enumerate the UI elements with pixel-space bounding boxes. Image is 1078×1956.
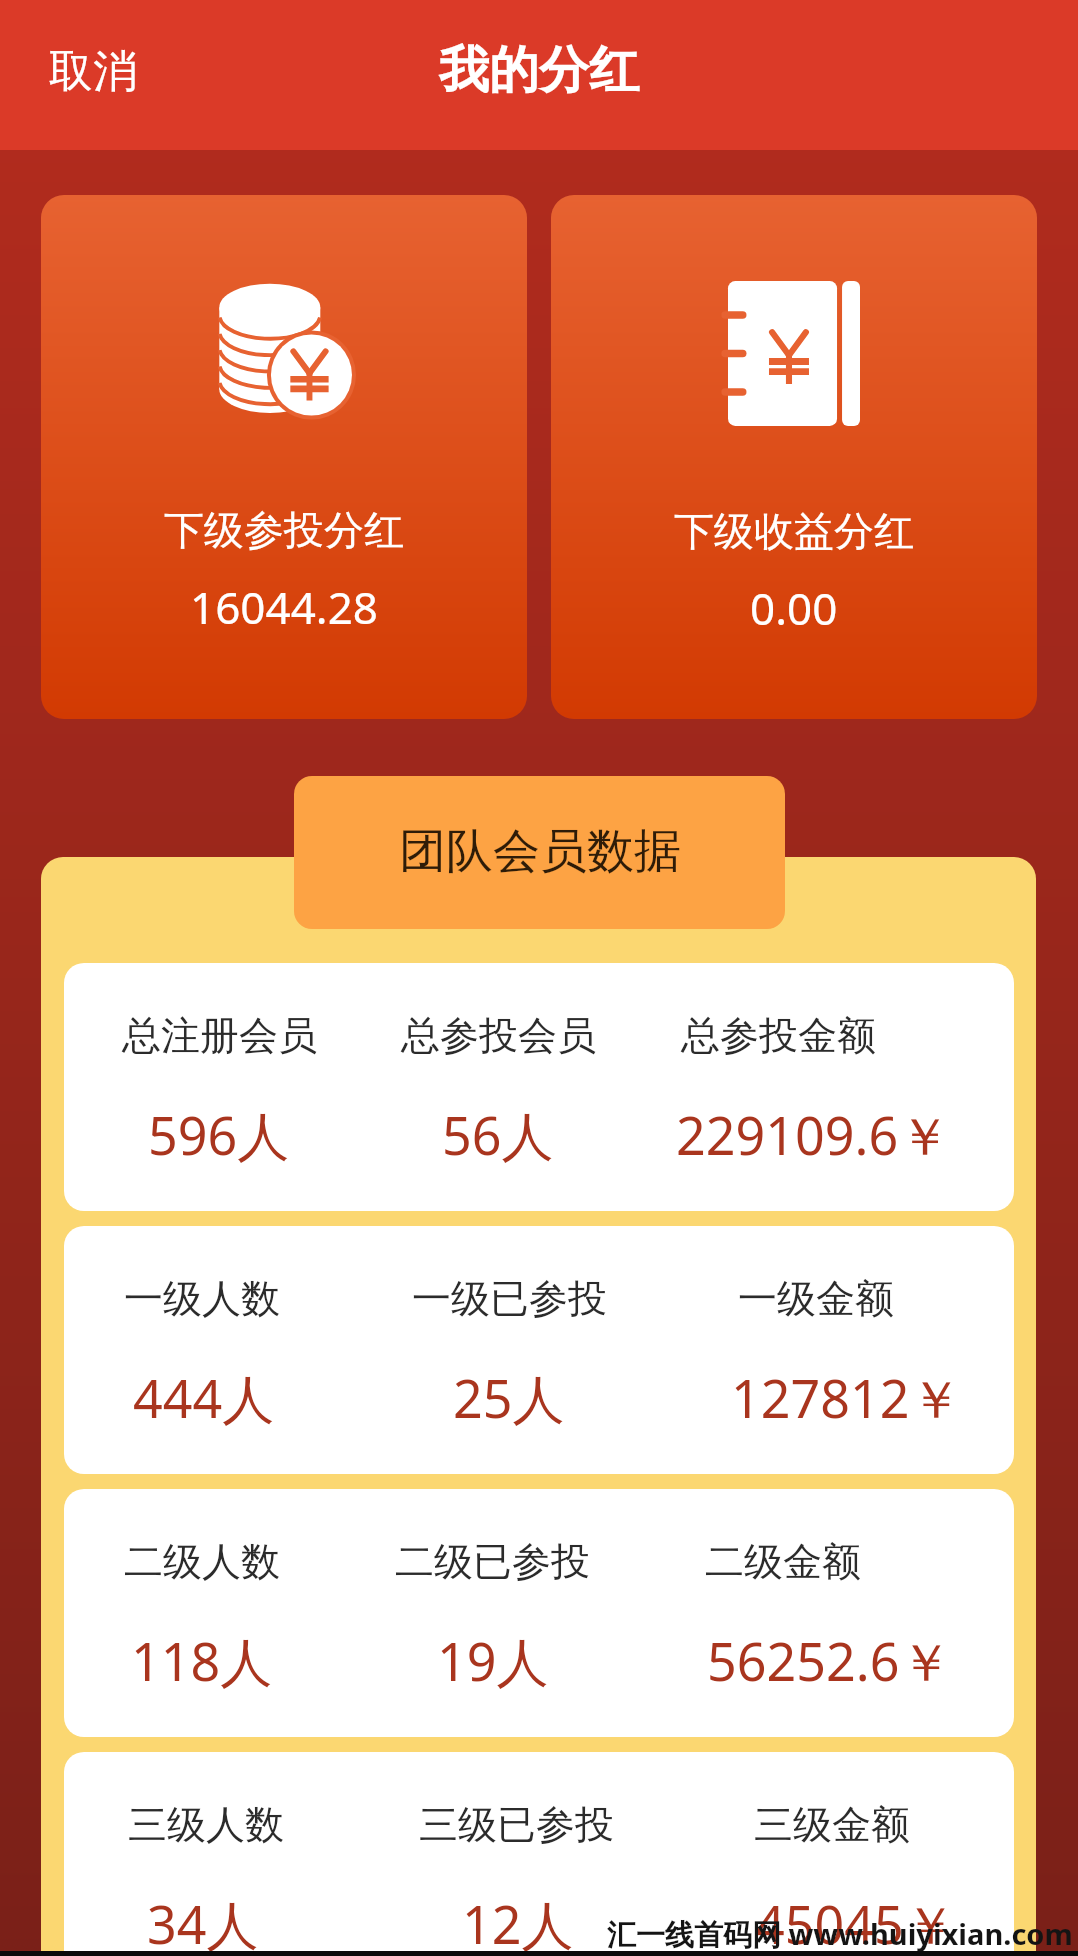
- other: Ledger: [728, 281, 860, 426]
- staticText: 444人: [133, 1362, 275, 1433]
- staticText: 一级金额: [738, 1274, 894, 1323]
- staticText: 三级金额: [754, 1800, 910, 1849]
- staticText: 三级人数: [128, 1800, 284, 1849]
- other: Coins: [218, 280, 350, 414]
- staticText: 取消: [49, 44, 137, 99]
- button[interactable]: Ledger: [551, 195, 1037, 719]
- staticText: 总参投金额: [681, 1011, 876, 1060]
- button[interactable]: 团队会员数据: [294, 776, 785, 929]
- staticText: 16044.28: [190, 577, 378, 637]
- staticText: 二级人数: [124, 1537, 280, 1586]
- staticText: 我的分红: [439, 39, 639, 102]
- staticText: 118人: [131, 1625, 273, 1696]
- staticText: 12人: [462, 1888, 574, 1956]
- staticText: 229109.6￥: [676, 1099, 951, 1170]
- staticText: 总注册会员: [122, 1011, 317, 1060]
- staticText: 127812￥: [731, 1362, 962, 1433]
- staticText: 一级人数: [124, 1274, 280, 1323]
- button[interactable]: 一级人数: [64, 1226, 1014, 1474]
- staticText: 45045￥: [755, 1888, 956, 1956]
- button[interactable]: Coins: [41, 195, 527, 719]
- staticText: 25人: [453, 1362, 565, 1433]
- staticText: 596人: [148, 1099, 290, 1170]
- staticText: 一级已参投: [412, 1274, 607, 1323]
- staticText: 下级参投分红: [164, 505, 404, 555]
- staticText: 三级已参投: [419, 1800, 614, 1849]
- staticText: 团队会员数据: [399, 822, 681, 881]
- button[interactable]: 取消: [25, 30, 161, 113]
- staticText: 34人: [147, 1888, 259, 1956]
- staticText: 下级收益分红: [674, 506, 914, 556]
- staticText: 56252.6￥: [707, 1625, 952, 1696]
- staticText: 二级已参投: [395, 1537, 590, 1586]
- staticText: 二级金额: [705, 1537, 861, 1586]
- staticText: 0.00: [750, 578, 838, 638]
- button[interactable]: 总注册会员: [64, 963, 1014, 1211]
- button[interactable]: 二级人数: [64, 1489, 1014, 1737]
- button[interactable]: 三级人数: [64, 1752, 1014, 1956]
- staticText: 19人: [437, 1625, 549, 1696]
- staticText: 总参投会员: [401, 1011, 596, 1060]
- staticText: 汇一线首码网 www.huiyixian.com: [607, 1914, 1073, 1954]
- staticText: 56人: [442, 1099, 554, 1170]
